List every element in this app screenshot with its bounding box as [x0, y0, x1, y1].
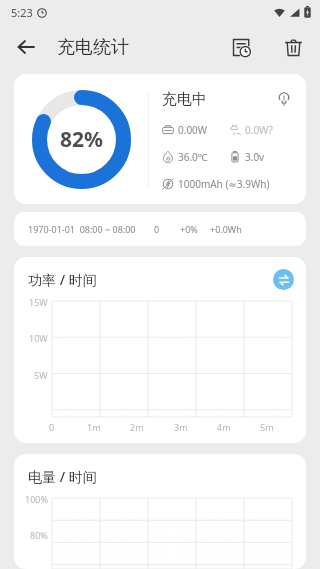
staticText: 36.0℃: [178, 150, 208, 164]
staticText: 1m: [87, 421, 101, 433]
button[interactable]: Switch chart: [273, 269, 294, 290]
staticText: 功率 / 时间: [28, 270, 97, 289]
staticText: 5m: [260, 421, 274, 433]
staticText: 充电统计: [57, 36, 129, 59]
staticText: 5:23: [11, 5, 33, 20]
button[interactable]: 82%: [14, 74, 306, 204]
staticText: 82%: [60, 125, 103, 154]
staticText: 0: [49, 421, 55, 433]
staticText: 15W: [29, 296, 48, 308]
staticText: 10W: [29, 332, 48, 344]
button[interactable]: Delete: [274, 28, 312, 66]
staticText: 1000mAh (≈3.9Wh): [178, 177, 270, 191]
staticText: 80%: [30, 529, 48, 541]
staticText: 电量 / 时间: [28, 467, 97, 486]
staticText: +0.0Wh: [210, 223, 242, 235]
button[interactable]: Back: [7, 28, 45, 66]
staticText: 0: [154, 223, 160, 235]
button[interactable]: History: [222, 28, 260, 66]
staticText: 0.0W?: [245, 123, 273, 137]
staticText: 100%: [25, 493, 48, 505]
staticText: 4m: [217, 421, 231, 433]
staticText: 3.0v: [245, 150, 265, 164]
staticText: 0.00W: [178, 123, 208, 137]
staticText: 1970-01-01 08:00 ~ 08:00: [28, 223, 136, 235]
button[interactable]: Tips: [272, 87, 296, 111]
staticText: 充电中: [162, 90, 207, 109]
staticText: +0%: [180, 223, 198, 235]
button[interactable]: 1970-01-01 08:00 ~ 08:00: [14, 212, 306, 246]
staticText: 2m: [130, 421, 144, 433]
staticText: 3m: [174, 421, 188, 433]
staticText: 5W: [34, 369, 48, 381]
